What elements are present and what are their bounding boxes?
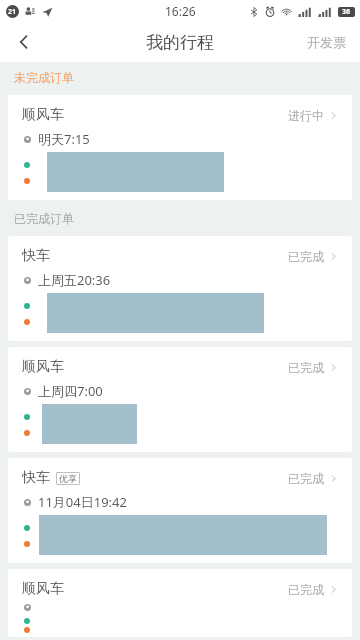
- staticText: 已完成: [288, 249, 324, 264]
- staticText: 顺风车: [22, 358, 64, 376]
- button[interactable]: 快车: [8, 236, 352, 341]
- button[interactable]: Back: [0, 22, 48, 62]
- staticText: 上周四7:00: [38, 382, 103, 400]
- staticText: 16:26: [165, 3, 196, 19]
- staticText: 已完成: [288, 360, 324, 375]
- staticText: 顺风车: [22, 106, 64, 124]
- staticText: 明天7:15: [38, 130, 90, 148]
- staticText: 未完成订单: [14, 70, 74, 85]
- staticText: 快车: [22, 469, 50, 487]
- staticText: 快车: [22, 247, 50, 265]
- staticText: 我的行程: [146, 32, 214, 53]
- staticText: 优享: [59, 473, 77, 484]
- staticText: 开发票: [307, 34, 346, 50]
- button[interactable]: 开发票: [293, 22, 360, 62]
- staticText: 已完成: [288, 471, 324, 486]
- staticText: 上周五20:36: [38, 271, 111, 289]
- staticText: 已完成订单: [14, 211, 74, 226]
- button[interactable]: 顺风车: [8, 569, 352, 637]
- staticText: 已完成: [288, 582, 324, 597]
- button[interactable]: 顺风车: [8, 347, 352, 452]
- staticText: 36: [342, 7, 351, 17]
- staticText: 21: [8, 7, 17, 17]
- staticText: 进行中: [288, 108, 324, 123]
- staticText: 11月04日19:42: [38, 493, 127, 511]
- button[interactable]: 快车: [8, 458, 352, 563]
- staticText: 顺风车: [22, 580, 64, 598]
- button[interactable]: 顺风车: [8, 95, 352, 200]
